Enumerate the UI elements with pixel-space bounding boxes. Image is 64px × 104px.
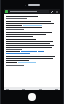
button[interactable]: Toolbar action bbox=[21, 88, 26, 90]
button[interactable]: Toolbar action bbox=[54, 88, 59, 90]
button[interactable]: Toolbar action bbox=[5, 88, 10, 90]
button[interactable]: Call bbox=[50, 10, 54, 14]
button[interactable]: Toolbar action bbox=[38, 88, 43, 90]
button[interactable] bbox=[9, 10, 49, 13]
button[interactable]: Home bbox=[28, 93, 36, 101]
button[interactable]: More options bbox=[55, 10, 59, 14]
button[interactable]: App icon bbox=[5, 10, 8, 13]
